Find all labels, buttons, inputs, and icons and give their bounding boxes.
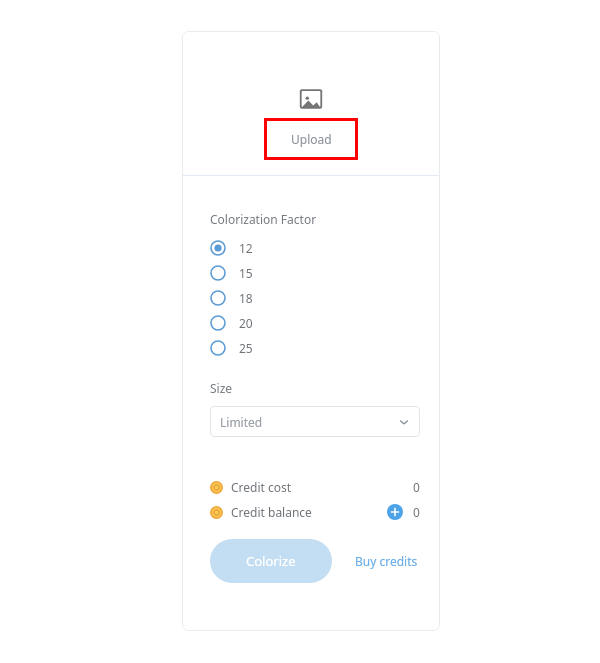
staticText: Credit cost: [231, 479, 292, 495]
staticText: Size: [210, 380, 233, 396]
staticText: Upload: [291, 131, 332, 147]
staticText: 20: [239, 315, 253, 331]
staticText: Buy credits: [355, 553, 418, 569]
staticText: Colorize: [246, 552, 296, 570]
staticText: 25: [239, 340, 253, 356]
button[interactable]: 25: [210, 335, 420, 360]
button[interactable]: Upload: [264, 118, 358, 160]
button[interactable]: Add credits: [387, 504, 403, 520]
staticText: Colorization Factor: [210, 211, 317, 227]
button[interactable]: 15: [210, 260, 420, 285]
button[interactable]: 12: [210, 235, 420, 260]
staticText: Credit balance: [231, 504, 312, 520]
staticText: 12: [239, 240, 253, 256]
button[interactable]: 20: [210, 310, 420, 335]
staticText: Limited: [220, 414, 263, 430]
staticText: 0: [413, 504, 420, 520]
staticText: 0: [413, 479, 420, 495]
button[interactable]: Colorize: [210, 539, 332, 583]
other: Image placeholder: [298, 86, 324, 112]
staticText: 18: [239, 290, 253, 306]
button[interactable]: 18: [210, 285, 420, 310]
staticText: 15: [239, 265, 253, 281]
button[interactable]: Buy credits: [353, 547, 420, 575]
button[interactable]: Limited: [210, 406, 420, 437]
